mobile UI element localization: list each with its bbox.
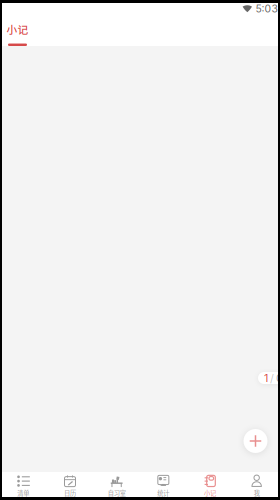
staticText: 自习室 bbox=[108, 488, 126, 498]
staticText: 日历 bbox=[64, 488, 76, 498]
staticText: 清单 bbox=[17, 488, 29, 498]
button[interactable]: 清单 bbox=[0, 472, 47, 497]
button[interactable]: 我 bbox=[233, 472, 280, 497]
staticText: / bbox=[270, 371, 274, 384]
staticText: 5:03 bbox=[255, 2, 277, 15]
staticText: 0 bbox=[276, 371, 280, 384]
staticText: 我 bbox=[254, 488, 260, 498]
staticText: 1 bbox=[264, 371, 268, 384]
staticText: 统计 bbox=[157, 488, 169, 498]
staticText: 小记 bbox=[6, 21, 28, 37]
button[interactable]: 小记 bbox=[187, 472, 233, 497]
button[interactable]: 自习室 bbox=[93, 472, 140, 497]
button[interactable]: New note bbox=[243, 429, 267, 453]
staticText: 小记 bbox=[204, 488, 216, 498]
button[interactable]: 日历 bbox=[47, 472, 93, 497]
button[interactable]: 统计 bbox=[140, 472, 187, 497]
